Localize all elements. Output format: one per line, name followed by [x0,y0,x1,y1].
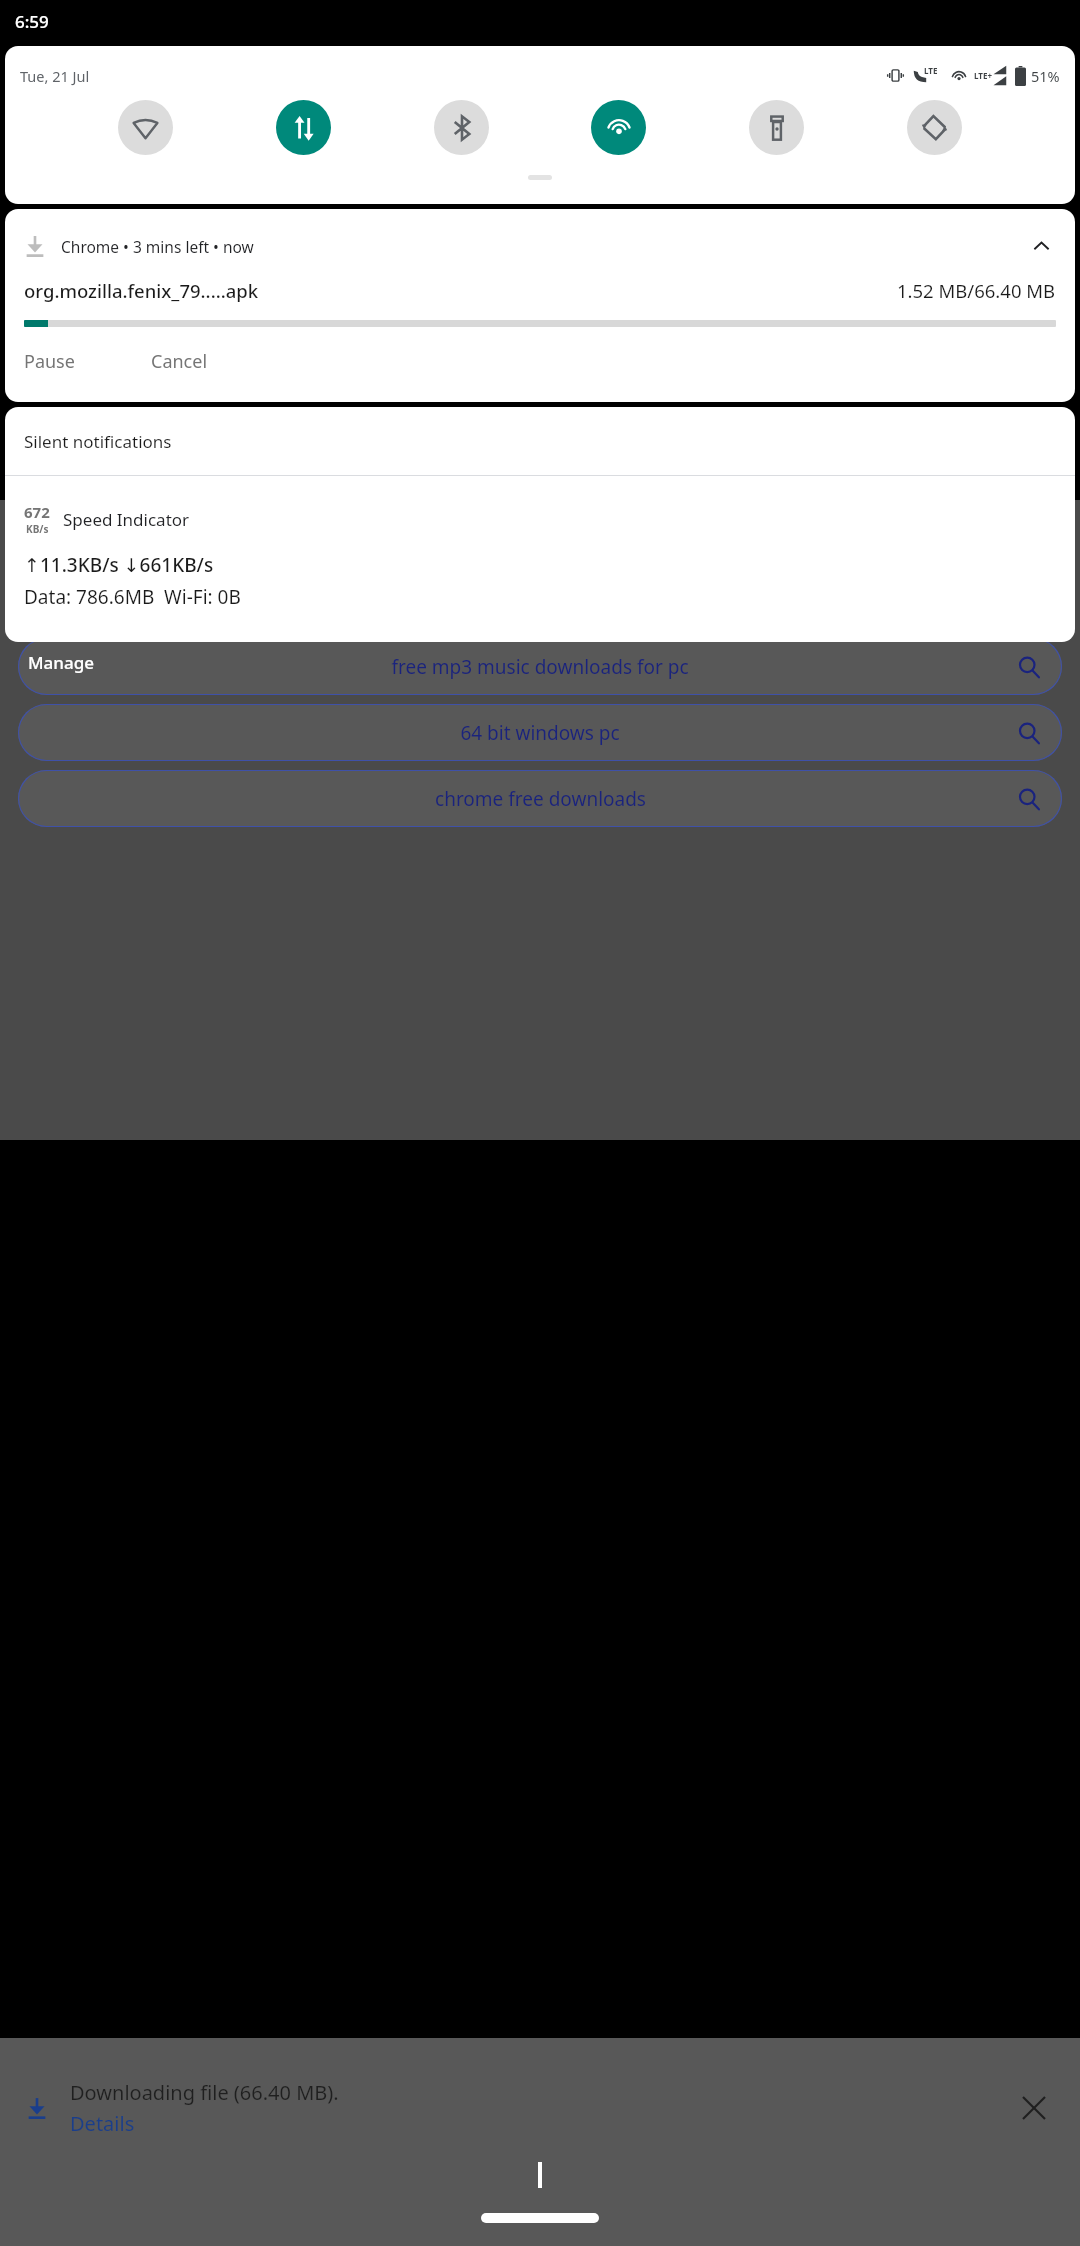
button[interactable]: Collapse [1026,231,1056,261]
staticText: 672 [24,502,50,522]
button[interactable]: Silent notifications [5,407,1075,475]
button[interactable]: Chrome • 3 mins left • now [5,209,1075,402]
staticText: 64 bit windows pc [460,720,620,746]
staticText: Data: 786.6MB Wi-Fi: 0B [24,584,241,610]
staticText: Downloading file (66.40 MB). [70,2079,339,2106]
button[interactable]: free mp3 music downloads for pc [18,638,1062,695]
button[interactable]: 672 [5,476,1075,642]
staticText: LTE [924,65,938,76]
button[interactable]: Manage [28,651,95,674]
button[interactable]: Quick setting toggle [907,100,962,155]
button[interactable]: Downloading file (66.40 MB). [0,2038,1080,2178]
staticText: LTE+ [974,70,992,81]
button[interactable]: Pause [24,349,79,374]
staticText: free mp3 music downloads for pc [391,654,689,680]
button[interactable]: Quick setting toggle [434,100,489,155]
button[interactable]: chrome free downloads [18,770,1062,827]
staticText: Tue, 21 Jul [20,66,90,86]
button[interactable]: app to open downloads on android [18,572,1062,629]
button[interactable]: Quick setting toggle [118,100,173,155]
staticText: chrome free downloads [435,786,646,812]
staticText: Details [70,2110,135,2137]
staticText: org.mozilla.fenix_79.....apk [24,278,259,303]
staticText: KB/s [26,522,49,536]
button[interactable]: Quick setting toggle [591,100,646,155]
button[interactable]: 64 bit windows pc [18,704,1062,761]
staticText: Manage [28,651,95,674]
staticText: 51% [1031,66,1060,86]
staticText: Silent notifications [24,430,172,453]
staticText: Cancel [151,349,208,374]
button[interactable]: update version apps [18,506,1062,563]
button[interactable]: Cancel [151,349,208,374]
staticText: 1.52 MB/66.40 MB [897,278,1056,303]
staticText: Speed Indicator [63,508,190,531]
staticText: Pause [24,349,75,374]
staticText: 6:59 [15,10,49,33]
button[interactable]: Quick setting toggle [749,100,804,155]
button[interactable]: Close [1014,2088,1054,2128]
staticText: ↑11.3KB/s ↓661KB/s [24,552,214,578]
staticText: Chrome • 3 mins left • now [61,236,254,257]
button[interactable]: Details [70,2110,135,2137]
button[interactable]: Quick setting toggle [276,100,331,155]
